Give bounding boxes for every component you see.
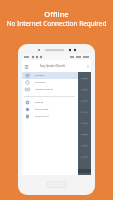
button[interactable]: Close navigation drawer: [78, 72, 91, 175]
button[interactable]: Favourites: [22, 79, 91, 86]
button[interactable]: Members Phones: [22, 86, 91, 93]
button[interactable]: Settings: [22, 99, 91, 106]
button[interactable]: Rate this app: [22, 106, 91, 113]
button[interactable]: More options: [86, 64, 90, 68]
button[interactable]: Privacy Policy: [22, 113, 91, 120]
staticText: Settings: [35, 101, 44, 104]
staticText: Offline: [0, 9, 113, 19]
staticText: Easy Speaks (Danish): [40, 64, 66, 68]
staticText: Category: [35, 74, 45, 77]
staticText: Members Phones: [35, 88, 53, 91]
staticText: No Internet Connection Required: [0, 19, 113, 28]
button[interactable]: Open navigation drawer: [24, 64, 29, 69]
staticText: Favourites: [35, 81, 46, 84]
staticText: Rate this app: [35, 108, 49, 111]
button[interactable]: Category: [22, 72, 91, 79]
staticText: Privacy Policy: [35, 115, 49, 118]
